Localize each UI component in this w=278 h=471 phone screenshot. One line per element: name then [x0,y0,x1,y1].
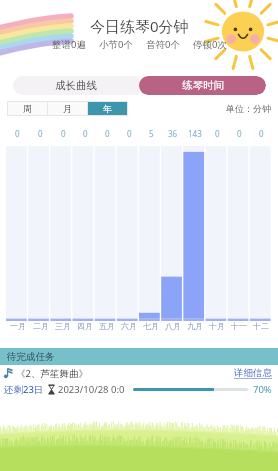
staticText: 0 [38,128,43,139]
staticText: 0 [61,128,66,139]
staticText: 单位：分钟 [226,103,271,114]
staticText: 5 [149,128,154,139]
staticText: 十月 [209,321,225,331]
staticText: 今日练琴0分钟 [90,16,189,36]
staticText: 0 [237,128,242,139]
staticText: 月 [63,103,72,114]
staticText: 0 [105,128,110,139]
staticText: 六月 [121,321,137,331]
staticText: 十二 [253,321,269,331]
staticText: 练琴时间 [182,79,224,92]
staticText: 143 [188,128,202,139]
staticText: 七月 [143,321,159,331]
staticText: 三月 [55,321,71,331]
staticText: 四月 [77,321,93,331]
staticText: 八月 [165,321,181,331]
staticText: 0 [127,128,132,139]
button[interactable]: 年 [88,102,127,115]
button[interactable]: 练琴时间 [139,76,266,95]
staticText: 小节0个 [99,38,133,51]
staticText: 0 [215,128,220,139]
staticText: 70% [253,383,272,396]
button[interactable]: 周 [8,102,47,115]
staticText: 十一 [231,321,247,331]
staticText: 待完成任务 [7,351,55,363]
staticText: 五月 [99,321,115,331]
staticText: 《2、芦笙舞曲》 [16,367,88,380]
staticText: 还剩23日 [4,383,44,396]
staticText: 停顿0次 [193,38,227,51]
staticText: 周 [23,103,32,114]
staticText: 年 [103,103,112,114]
button[interactable]: 月 [48,102,87,115]
button[interactable]: 成长曲线 [13,76,139,95]
staticText: 成长曲线 [55,79,97,92]
staticText: 整谱0遍 [52,38,86,51]
button[interactable]: 详细信息 [234,367,272,379]
staticText: 详细信息 [234,367,272,379]
staticText: 二月 [33,321,49,331]
staticText: 36 [168,128,178,139]
staticText: 九月 [187,321,203,331]
staticText: 音符0个 [146,38,180,51]
staticText: 一月 [10,321,26,331]
staticText: 2023/10/28 0:0 [58,383,125,396]
staticText: 0 [15,128,20,139]
staticText: 0 [259,128,264,139]
staticText: 0 [83,128,88,139]
